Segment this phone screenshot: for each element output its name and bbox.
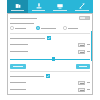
button[interactable]: Tab 3 <box>49 0 71 13</box>
button[interactable] <box>78 50 85 54</box>
button[interactable] <box>36 26 63 30</box>
button[interactable]: Tab 2 <box>28 0 49 13</box>
button[interactable] <box>78 88 85 92</box>
button[interactable] <box>78 81 85 85</box>
button[interactable]: Enable alert <box>10 74 90 78</box>
button[interactable]: Enable alert <box>10 36 90 40</box>
button[interactable]: Range slider <box>10 57 90 61</box>
button[interactable] <box>10 15 90 21</box>
button[interactable]: Tab 1 <box>7 0 28 13</box>
button[interactable]: Action button <box>76 64 90 69</box>
button[interactable] <box>10 26 36 30</box>
button[interactable]: Action button <box>10 64 26 69</box>
button[interactable] <box>78 43 85 47</box>
button[interactable] <box>63 26 90 30</box>
button[interactable]: Tab 4 <box>71 0 93 13</box>
button[interactable]: Enable alert <box>47 36 51 40</box>
button[interactable]: Enable alert <box>46 74 50 78</box>
